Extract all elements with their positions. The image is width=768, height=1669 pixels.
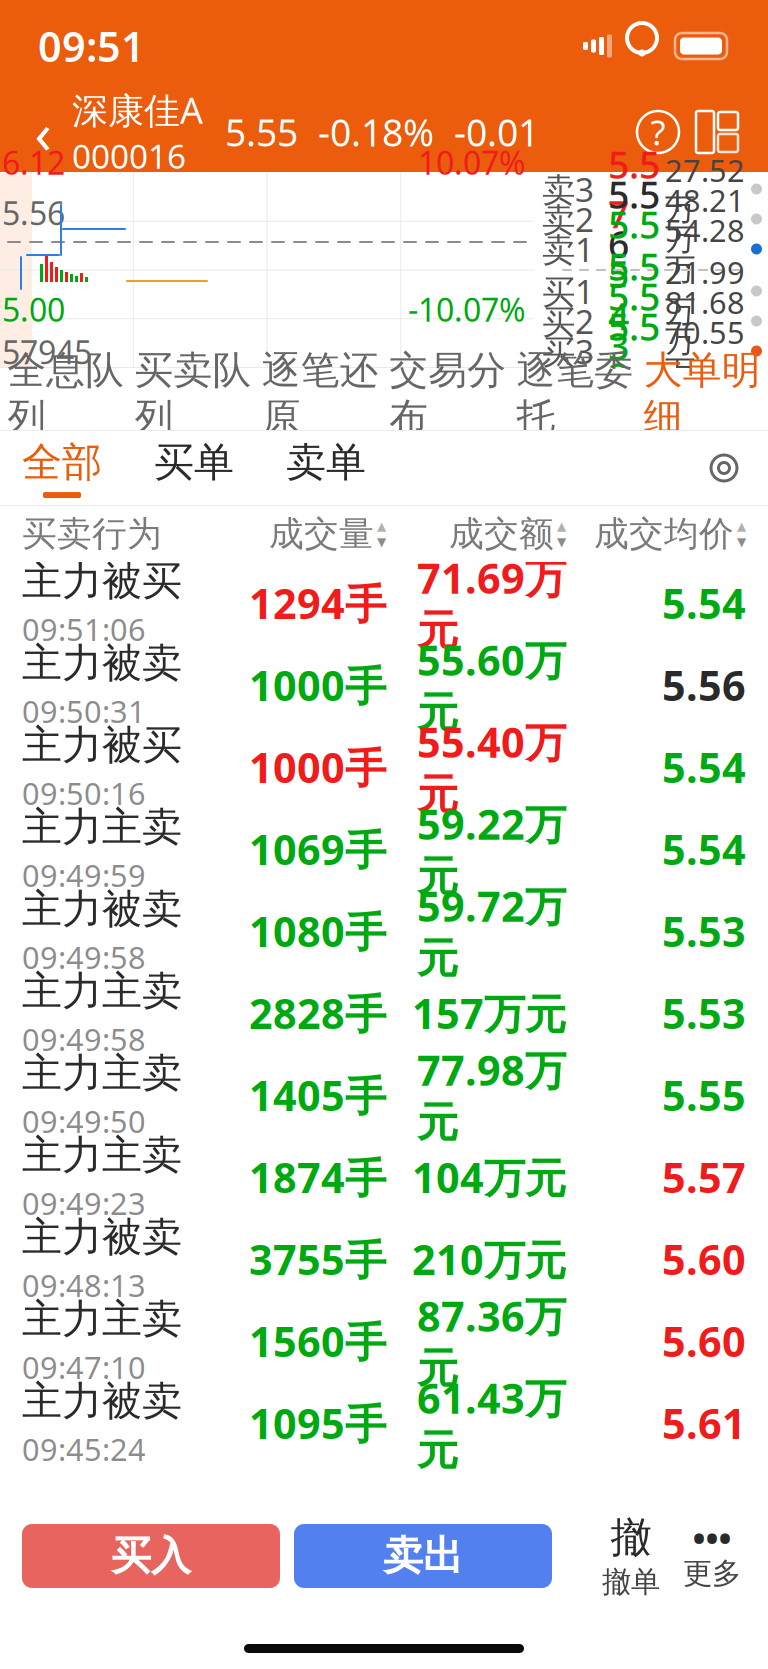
button[interactable]: ••• [670, 1519, 754, 1593]
staticText: 55.40万元 [417, 714, 566, 820]
staticText: 买卖队列 [134, 346, 251, 441]
button[interactable]: Settings [694, 438, 754, 498]
button[interactable]: 成交量 [269, 513, 386, 555]
button[interactable]: 主力被卖 [0, 1382, 768, 1464]
staticText: 1560手 [249, 1314, 386, 1368]
staticText: 5.56 [2, 191, 65, 234]
staticText: 3755手 [249, 1232, 386, 1286]
staticText: 09:49:23 [22, 1183, 146, 1223]
staticText: 5.54 [662, 740, 746, 794]
button[interactable]: 主力被买 [0, 726, 768, 808]
button[interactable]: Help [630, 104, 686, 160]
button[interactable]: 主力主卖 [0, 808, 768, 890]
staticText: 77.98万元 [417, 1042, 566, 1148]
staticText: 全息队列 [7, 346, 124, 441]
button[interactable]: 买2 [542, 306, 762, 336]
staticText: 主力被卖 [22, 1213, 182, 1262]
staticText: 09:49:50 [22, 1101, 146, 1141]
button[interactable]: 卖出 [294, 1524, 552, 1588]
staticText: 买1 [542, 269, 594, 313]
staticText: 5.57 [662, 1150, 746, 1204]
staticText: 1069手 [249, 822, 386, 876]
button[interactable]: 卖3 [542, 174, 762, 204]
staticText: 主力主卖 [22, 1131, 182, 1180]
staticText: ▲ [377, 519, 386, 533]
staticText: 1294手 [249, 576, 386, 630]
staticText: 大单明细 [644, 346, 761, 441]
button[interactable]: 成交额 [449, 513, 566, 555]
button[interactable]: 买入 [22, 1524, 280, 1588]
button[interactable]: 卖单 [286, 431, 418, 505]
staticText: 48.21万 [665, 180, 745, 258]
button[interactable]: Layout [686, 104, 748, 160]
button[interactable]: 主力被买 [0, 562, 768, 644]
button[interactable]: 主力主卖 [0, 1300, 768, 1382]
button[interactable]: 买3 [542, 336, 762, 366]
staticText: 主力被卖 [22, 1377, 182, 1426]
staticText: 57945 [2, 330, 92, 373]
button[interactable]: 买单 [154, 431, 286, 505]
staticText: 深康佳A [72, 86, 203, 134]
staticText: 81.68万 [665, 282, 745, 360]
staticText: 5.53 [608, 271, 660, 371]
staticText: 5.60 [662, 1232, 746, 1286]
staticText: 主力被卖 [22, 885, 182, 934]
staticText: 09:49:58 [22, 937, 146, 977]
staticText: 2828手 [249, 986, 386, 1040]
staticText: -10.07% [408, 288, 526, 330]
button[interactable]: 逐笔委托 [511, 368, 639, 430]
staticText: 09:51:06 [22, 609, 146, 649]
button[interactable]: 全息队列 [2, 368, 129, 430]
staticText: 主力被买 [22, 721, 182, 770]
staticText: 09:49:59 [22, 855, 146, 895]
staticText: 5.55 -0.18% -0.01 [225, 107, 539, 157]
staticText: 000016 [72, 134, 186, 178]
staticText: 210万元 [412, 1232, 566, 1286]
staticText: 撤 [610, 1512, 651, 1563]
staticText: 5.56 [608, 169, 660, 269]
button[interactable]: 大单明细 [639, 368, 766, 430]
staticText: 卖3 [542, 167, 594, 211]
button[interactable]: 买卖队列 [129, 368, 257, 430]
staticText: 主力主卖 [22, 967, 182, 1016]
staticText: 主力主卖 [22, 1295, 182, 1344]
button[interactable]: 主力主卖 [0, 972, 768, 1054]
button[interactable]: 主力主卖 [0, 1054, 768, 1136]
staticText: 61.43万元 [417, 1370, 566, 1476]
staticText: 1000手 [249, 658, 386, 712]
staticText: 卖出 [383, 1531, 463, 1580]
button[interactable]: 主力被卖 [0, 890, 768, 972]
staticText: 70.55万 [665, 312, 745, 390]
button[interactable]: 主力被卖 [0, 644, 768, 726]
staticText: 1874手 [249, 1150, 386, 1204]
staticText: 104万元 [412, 1150, 566, 1204]
staticText: 87.36万元 [417, 1288, 566, 1394]
staticText: 5.53 [662, 986, 746, 1040]
button[interactable]: 主力被卖 [0, 1218, 768, 1300]
staticText: 54.28万 [665, 210, 745, 288]
staticText: 5.54 [608, 241, 660, 341]
staticText: 买2 [542, 299, 594, 343]
button[interactable]: 全部 [22, 431, 154, 505]
staticText: 主力主卖 [22, 1049, 182, 1098]
button[interactable]: Back [20, 102, 66, 162]
staticText: 主力被卖 [22, 639, 182, 688]
button[interactable]: 卖2 [542, 204, 762, 234]
staticText: 09:48:13 [22, 1265, 146, 1305]
staticText: 09:51 [38, 19, 145, 73]
button[interactable]: 撤 [592, 1519, 670, 1593]
staticText: 09:50:31 [22, 691, 146, 731]
staticText: 5.53 [662, 904, 746, 958]
staticText: 主力主卖 [22, 803, 182, 852]
staticText: 1080手 [249, 904, 386, 958]
button[interactable]: 逐笔还原 [257, 368, 384, 430]
staticText: 1095手 [249, 1396, 386, 1450]
button[interactable]: 卖1 [542, 234, 762, 264]
staticText: 59.72万元 [417, 878, 566, 984]
button[interactable]: 交易分布 [384, 368, 511, 430]
staticText: 卖1 [542, 227, 594, 271]
staticText: ‹ [34, 95, 51, 169]
button[interactable]: 买1 [542, 276, 762, 306]
button[interactable]: 成交均价 [594, 513, 746, 555]
button[interactable]: 主力主卖 [0, 1136, 768, 1218]
